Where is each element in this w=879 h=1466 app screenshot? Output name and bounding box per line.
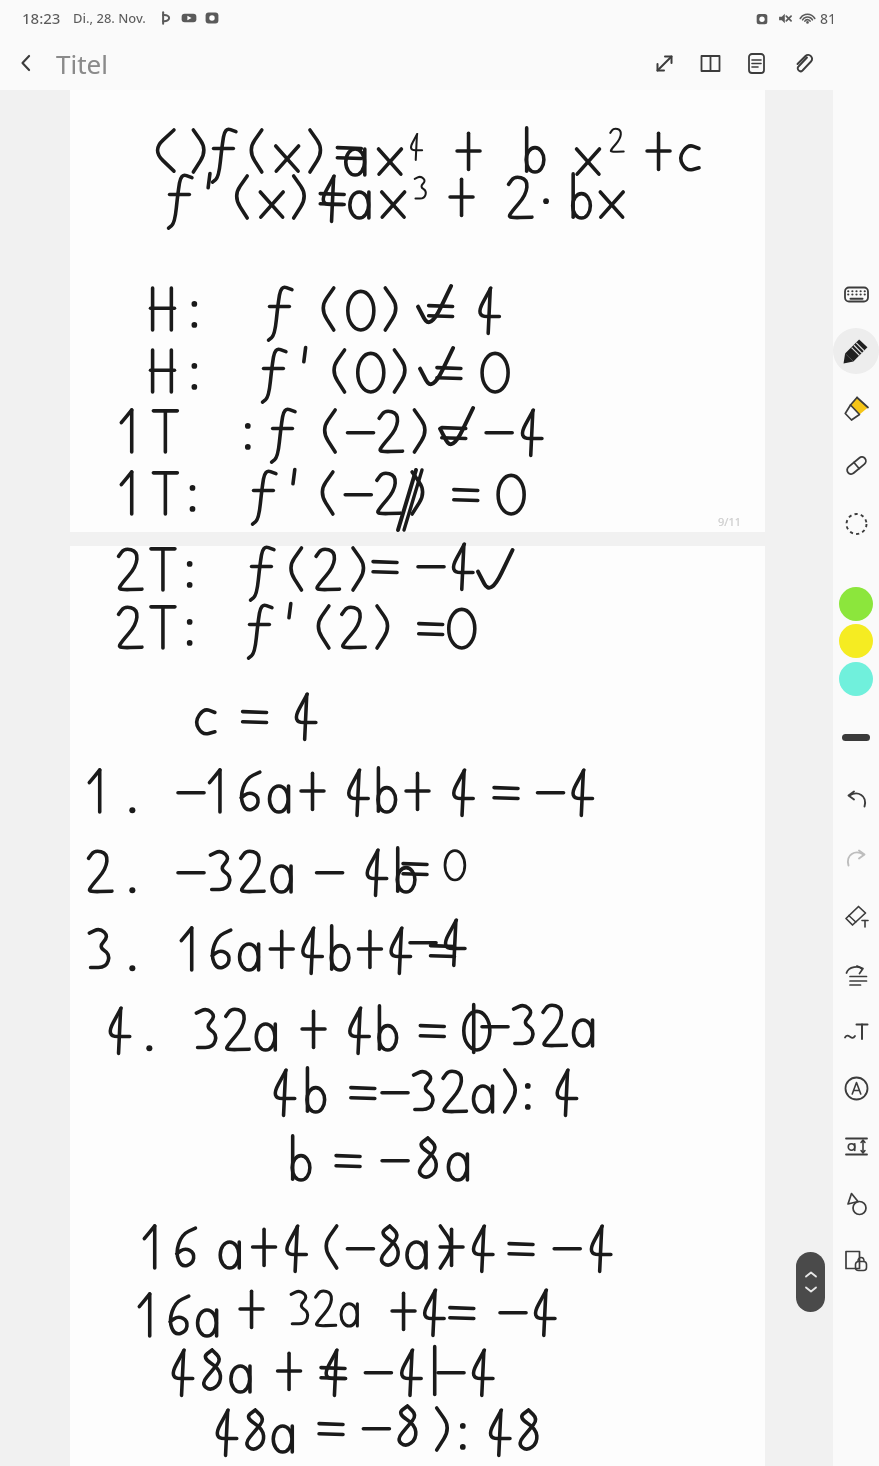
button[interactable]: Lock — [834, 1238, 878, 1282]
button[interactable]: Expand — [641, 40, 687, 86]
button[interactable]: Green — [839, 587, 873, 621]
button[interactable]: Pen — [833, 328, 879, 374]
button[interactable]: Auto format — [834, 1066, 878, 1110]
button[interactable]: Pen settings — [834, 894, 878, 938]
button[interactable]: Convert to text — [834, 952, 878, 996]
button[interactable]: Attach — [779, 40, 825, 86]
button[interactable]: Titel — [52, 40, 112, 87]
button[interactable]: Redo — [834, 835, 878, 879]
staticText: Titel — [56, 46, 108, 81]
button[interactable]: Book view — [687, 40, 733, 86]
staticText: 18:23 — [22, 8, 61, 28]
button[interactable]: Text size — [834, 1123, 878, 1167]
button[interactable]: Highlighter — [834, 386, 878, 430]
button[interactable]: Back — [0, 37, 52, 89]
button[interactable]: Scroll page — [796, 1252, 825, 1312]
staticText: 81% — [820, 9, 848, 28]
button[interactable]: Undo — [834, 776, 878, 820]
button[interactable]: Handwriting to text — [834, 1009, 878, 1053]
button[interactable]: Shapes — [834, 1181, 878, 1225]
button[interactable]: Lasso select — [834, 501, 878, 545]
button[interactable] — [70, 90, 765, 532]
button[interactable]: Keyboard — [834, 272, 878, 316]
button[interactable]: Eraser — [834, 443, 878, 487]
button[interactable]: Notes — [733, 40, 779, 86]
button[interactable]: Cyan — [839, 662, 873, 696]
staticText: 9/11 — [718, 514, 741, 529]
button[interactable] — [70, 546, 765, 1466]
button[interactable]: Yellow — [839, 624, 873, 658]
staticText: Di., 28. Nov. — [73, 9, 146, 27]
button[interactable]: Stroke width — [842, 734, 870, 741]
